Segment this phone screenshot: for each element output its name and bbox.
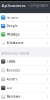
staticText: Cámara xyxy=(7,60,15,63)
button[interactable]: NetSuite xyxy=(0,13,50,22)
staticText: Aplicaciones xyxy=(2,3,26,8)
staticText: Ajustes xyxy=(7,77,17,81)
button[interactable]: Ajustes xyxy=(0,75,50,83)
staticText: Anuncios xyxy=(7,69,20,72)
staticText: Medibank xyxy=(7,95,20,98)
staticText: Alibaba.com xyxy=(7,41,23,45)
staticText: Servicios del sistema xyxy=(1,52,28,55)
button[interactable]: LCD xyxy=(0,84,50,92)
staticText: Google xyxy=(7,24,18,28)
staticText: LCD xyxy=(7,86,12,90)
button[interactable]: Google xyxy=(0,22,50,30)
button[interactable]: Medibank xyxy=(0,92,50,100)
staticText: WhatsApp xyxy=(7,33,20,36)
button[interactable]: Alibaba.com xyxy=(0,39,50,47)
staticText: Configuración xyxy=(28,4,48,7)
button[interactable]: Cámara xyxy=(0,57,50,66)
button[interactable]: Anuncios xyxy=(0,66,50,75)
button[interactable]: WhatsApp xyxy=(0,30,50,39)
staticText: NetSuite xyxy=(7,16,19,19)
button[interactable]: Aplicaciones xyxy=(2,3,26,8)
button[interactable]: Configuración xyxy=(28,4,48,7)
